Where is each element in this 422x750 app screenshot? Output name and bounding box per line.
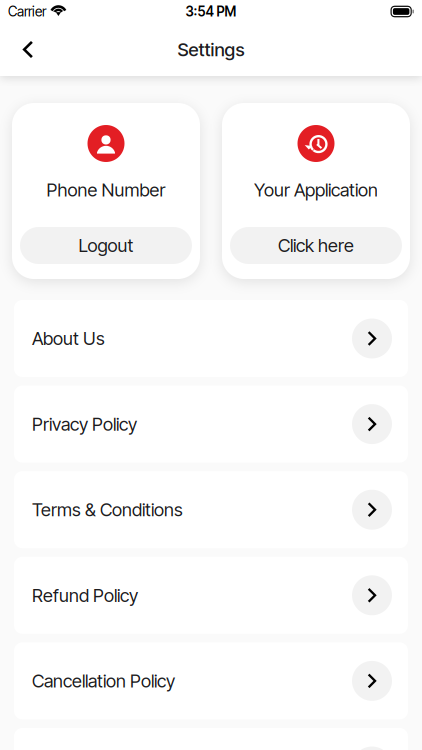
button[interactable]: Terms & Conditions	[14, 471, 408, 548]
staticText: Terms & Conditions	[32, 499, 183, 521]
staticText: Cancellation Policy	[32, 670, 175, 692]
staticText: Your Application	[254, 179, 378, 201]
button[interactable]: Logout	[20, 227, 192, 264]
button[interactable]: Cancellation Policy	[14, 642, 408, 719]
button[interactable]: Privacy Policy	[14, 386, 408, 463]
button[interactable]: Refund Policy	[14, 557, 408, 634]
staticText: 3:54 PM	[185, 3, 236, 20]
button[interactable]: About Us	[14, 300, 408, 377]
button[interactable]: Back	[6, 27, 50, 71]
staticText: About Us	[32, 327, 105, 349]
staticText: Logout	[78, 234, 133, 256]
button[interactable]: Click here	[230, 227, 402, 264]
staticText: Privacy Policy	[32, 413, 137, 435]
staticText: Click here	[278, 234, 354, 256]
staticText: Refund Policy	[32, 584, 138, 606]
staticText: Phone Number	[46, 179, 165, 201]
staticText: Carrier	[8, 3, 46, 20]
staticText: Settings	[177, 38, 244, 61]
